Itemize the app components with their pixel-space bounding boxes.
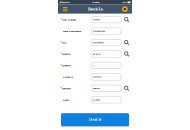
staticText: 4124398: [93, 18, 100, 21]
staticText: Item Number: [62, 18, 76, 21]
staticText: all done: [93, 99, 100, 101]
staticText: *: [60, 52, 62, 56]
staticText: *: [60, 86, 62, 91]
staticText: *: [60, 63, 62, 68]
staticText: *: [60, 40, 62, 45]
staticText: 10:35 AM: [92, 1, 100, 3]
staticText: R2-B1-01: [93, 53, 101, 55]
staticText: customer: [93, 76, 102, 78]
staticText: Warehouse 2: [93, 41, 104, 44]
button[interactable]: Search Customer: [121, 83, 132, 94]
staticText: Location: [62, 52, 70, 55]
button[interactable]: Menu: [60, 5, 71, 14]
staticText: Notes: [63, 98, 69, 101]
staticText: Check In: [88, 118, 101, 122]
staticText: Plate 3X0 (Rou...: [93, 30, 108, 32]
staticText: Assign To: [63, 75, 73, 78]
staticText: Check In: [87, 7, 102, 11]
staticText: Customer: [62, 87, 71, 90]
button[interactable]: Search Item Number: [121, 14, 132, 25]
staticText: Quantity: [62, 64, 71, 67]
button[interactable]: Check In: [61, 113, 129, 126]
button[interactable]: Search Location: [121, 48, 132, 60]
staticText: TGE7217: [93, 87, 100, 89]
staticText: Item Description: [63, 30, 81, 33]
button[interactable]: Search Site: [121, 37, 132, 48]
button[interactable]: Settings: [119, 5, 130, 14]
staticText: *: [60, 17, 62, 22]
staticText: 1: [93, 64, 94, 67]
staticText: Site: [62, 41, 66, 44]
staticText: 100%: [122, 1, 127, 3]
staticText: App Store: [62, 1, 70, 3]
